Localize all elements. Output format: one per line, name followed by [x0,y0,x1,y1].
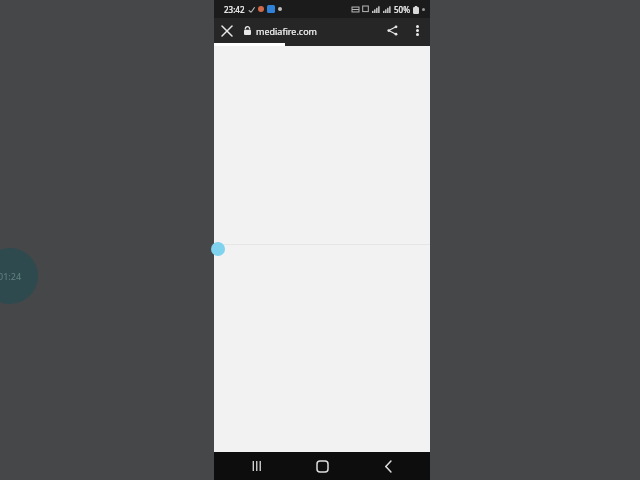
button[interactable]: More options [405,18,430,43]
staticText: 23:42 [224,4,245,15]
staticText: 01:24 [0,270,22,282]
staticText: 50% [394,4,410,15]
button[interactable]: Recent apps [232,452,280,480]
button[interactable]: Back [364,452,412,480]
button[interactable]: Close [214,18,239,43]
button[interactable]: Share [380,18,405,43]
staticText: mediafire.com [256,25,318,37]
other: Recording timer [0,248,38,304]
button[interactable]: mediafire.com [256,25,380,37]
button[interactable]: Home [298,452,346,480]
